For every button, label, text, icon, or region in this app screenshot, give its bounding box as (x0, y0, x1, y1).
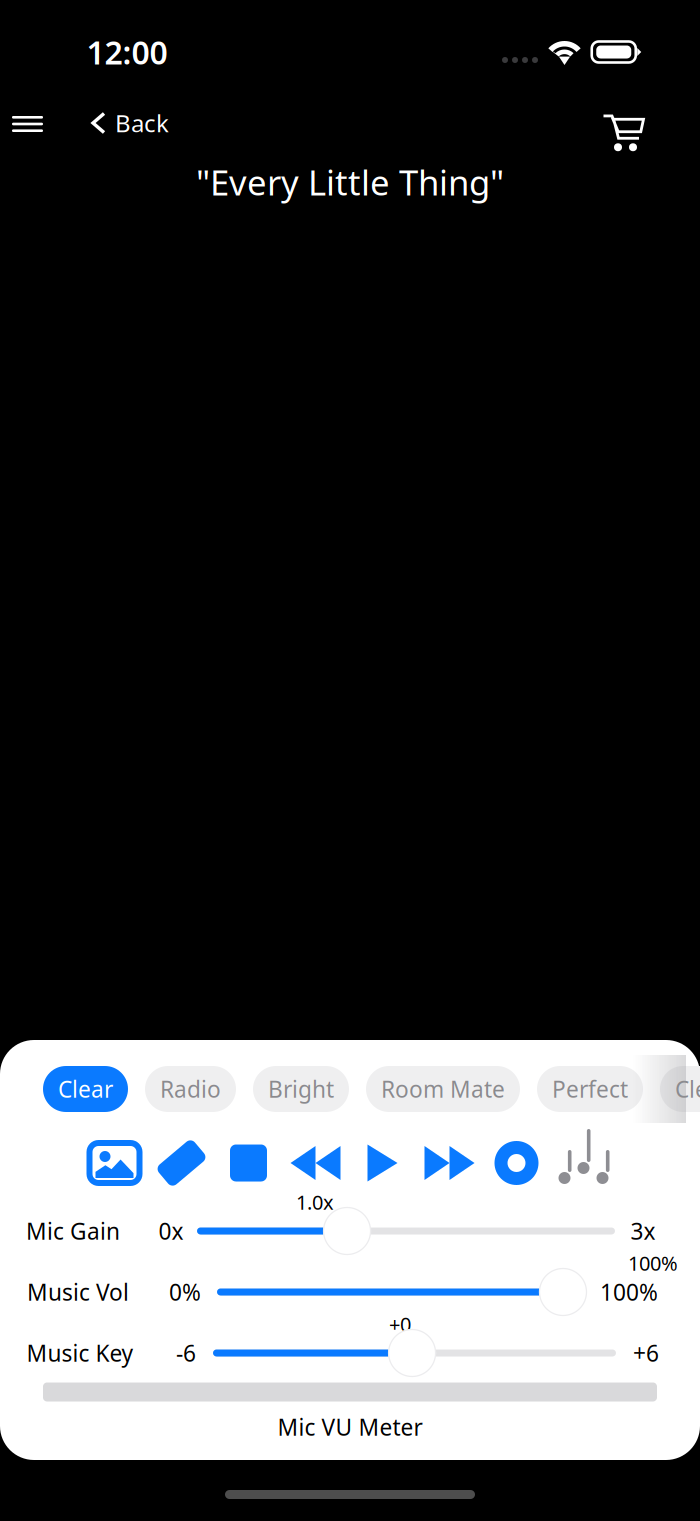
staticText: Bright (268, 1074, 334, 1104)
button[interactable]: Rewind (282, 1140, 349, 1186)
button[interactable]: Music (550, 1140, 617, 1186)
staticText: Radio (160, 1074, 221, 1104)
button[interactable]: Image (81, 1140, 148, 1186)
button[interactable]: Room Mate (366, 1066, 520, 1112)
staticText: Perfect (552, 1074, 628, 1104)
staticText: Mic Gain (26, 1216, 120, 1246)
staticText: 1.0x (296, 1189, 334, 1215)
staticText: 12:00 (86, 31, 167, 73)
button[interactable]: Record (483, 1140, 550, 1186)
staticText: "Every Little Thing" (196, 159, 504, 205)
button[interactable]: Clear (43, 1066, 128, 1112)
staticText: Mic VU Meter (277, 1412, 422, 1442)
staticText: 100% (628, 1250, 678, 1276)
button[interactable]: Bright (253, 1066, 349, 1112)
button[interactable]: Menu (0, 95, 56, 153)
staticText: 0x (158, 1216, 183, 1246)
button[interactable]: Perfect (537, 1066, 643, 1112)
staticText: +0 (389, 1311, 411, 1337)
staticText: Music Vol (27, 1277, 129, 1307)
staticText: Room Mate (381, 1074, 505, 1104)
button[interactable]: Stop (215, 1140, 282, 1186)
button[interactable]: Play (349, 1140, 416, 1186)
button[interactable]: Erase (148, 1140, 215, 1186)
staticText: +6 (633, 1338, 659, 1368)
button[interactable]: Radio (145, 1066, 236, 1112)
staticText: Music Key (26, 1338, 133, 1368)
staticText: 3x (630, 1216, 655, 1246)
staticText: -6 (176, 1338, 196, 1368)
staticText: Clear Mate (675, 1074, 700, 1104)
button[interactable]: Clear Mate (660, 1066, 700, 1112)
button[interactable]: Fast forward (416, 1140, 483, 1186)
staticText: Back (115, 107, 169, 139)
button[interactable]: Cart (603, 114, 645, 152)
staticText: 0% (169, 1277, 201, 1307)
staticText: 100% (600, 1277, 658, 1307)
staticText: Clear (58, 1074, 113, 1104)
button[interactable]: Back (85, 94, 177, 152)
